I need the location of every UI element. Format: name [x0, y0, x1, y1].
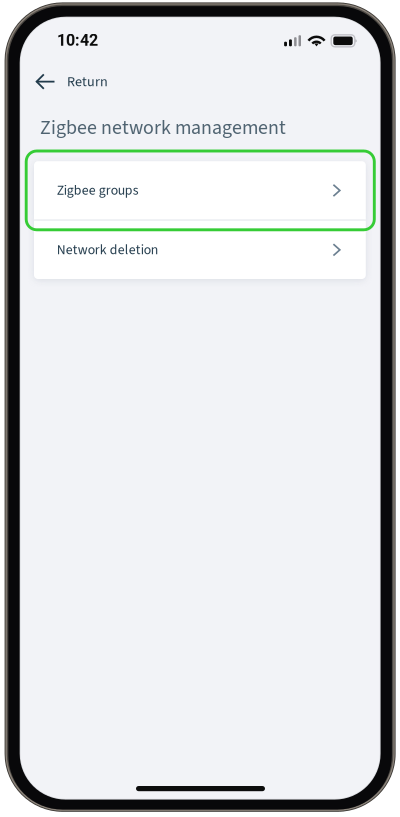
staticText: Zigbee groups — [57, 181, 139, 200]
button[interactable]: Return — [20, 64, 126, 100]
button[interactable]: Network deletion — [34, 221, 366, 279]
staticText: Zigbee network management — [40, 114, 286, 142]
button[interactable]: Zigbee groups — [34, 161, 366, 220]
staticText: 10:42 — [57, 31, 98, 50]
staticText: Network deletion — [57, 240, 159, 260]
staticText: Return — [67, 72, 108, 92]
